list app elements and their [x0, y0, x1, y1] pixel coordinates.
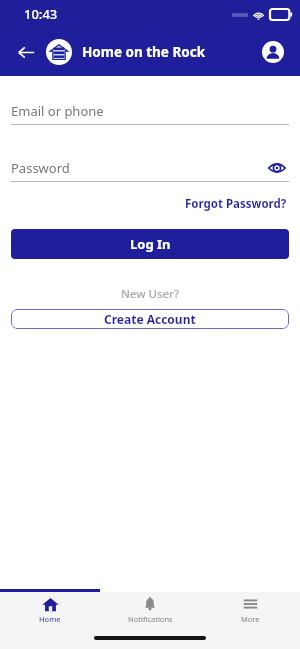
- staticText: Email or phone: [11, 102, 104, 120]
- staticText: Forgot Password?: [185, 196, 287, 212]
- button[interactable]: Account: [258, 37, 288, 67]
- staticText: Notifications: [128, 614, 173, 624]
- button[interactable]: Log In: [11, 229, 289, 259]
- staticText: Home on the Rock: [82, 43, 258, 61]
- button[interactable]: More: [200, 592, 300, 649]
- staticText: More: [241, 614, 260, 624]
- button[interactable]: Back: [12, 38, 40, 66]
- staticText: New User?: [11, 286, 289, 302]
- button[interactable]: Home: [0, 592, 100, 649]
- staticText: 10:43: [24, 5, 58, 23]
- staticText: Log In: [130, 235, 171, 253]
- staticText: Home: [39, 614, 61, 624]
- button[interactable]: Notifications: [100, 592, 200, 649]
- button[interactable]: Forgot Password?: [183, 195, 289, 213]
- staticText: Create Account: [104, 311, 196, 327]
- button[interactable]: Create Account: [11, 309, 289, 329]
- staticText: Password: [11, 159, 70, 177]
- button[interactable]: Show password: [265, 156, 289, 180]
